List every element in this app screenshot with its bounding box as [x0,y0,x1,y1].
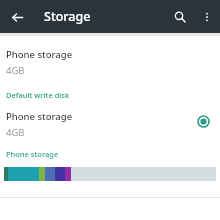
staticText: Default write disk [6,90,70,100]
staticText: Storage [44,8,91,25]
staticText: 4GB [6,126,25,139]
button[interactable]: Search [166,3,194,31]
button[interactable]: Storage usage breakdown [4,167,216,181]
staticText: Phone storage [6,149,59,159]
staticText: 4GB [6,64,25,77]
button[interactable]: Phone storage [0,110,220,139]
button[interactable]: Select phone storage [192,110,214,132]
button[interactable]: Phone storage [0,48,220,77]
staticText: Phone storage [6,48,73,61]
button[interactable]: More options [194,4,220,30]
staticText: Phone storage [6,110,73,123]
button[interactable]: Back [3,3,31,31]
